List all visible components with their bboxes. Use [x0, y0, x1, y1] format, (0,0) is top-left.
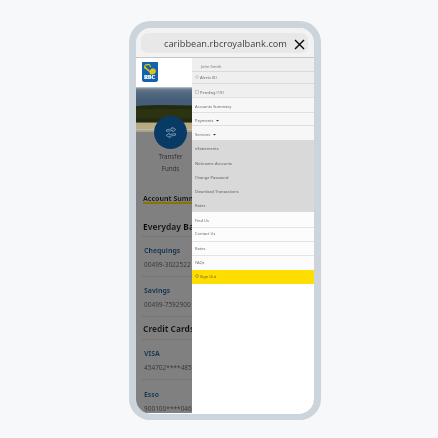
staticText: 00499-7592900 [144, 300, 191, 309]
staticText: Download Transactions [195, 189, 239, 194]
staticText: 00499-3022522 [144, 260, 191, 269]
button[interactable]: Services [192, 129, 314, 139]
button[interactable]: Find Us [192, 215, 314, 225]
staticText: Sign Out [200, 274, 217, 279]
button[interactable]: Transfer Funds [154, 116, 187, 149]
button[interactable]: Savings [136, 286, 314, 314]
button[interactable]: Payments [192, 115, 314, 125]
button[interactable]: John Smith [192, 61, 314, 71]
staticText: caribbean.rbcroyalbank.com [164, 37, 287, 50]
button[interactable]: Accounts Summary [192, 101, 314, 111]
staticText: Accounts Summary [195, 104, 232, 109]
button[interactable]: Esso [136, 390, 314, 414]
button[interactable]: VISA [136, 349, 314, 377]
button[interactable]: Chequings [136, 246, 314, 274]
button[interactable]: Rates [192, 200, 314, 210]
staticText: Find Us [195, 218, 209, 223]
button[interactable]: caribbean.rbcroyalbank.com [141, 33, 308, 53]
button[interactable]: Rates [192, 243, 314, 253]
staticText: Savings [144, 286, 171, 295]
staticText: Funds [139, 164, 202, 172]
staticText: Rates [195, 246, 206, 251]
staticText: Account Summary [143, 194, 207, 204]
staticText: Change Password [195, 175, 229, 180]
staticText: Services [195, 132, 211, 137]
button[interactable]: Alerts (0) [192, 72, 314, 82]
staticText: 900100****0460 [144, 404, 196, 413]
button[interactable]: Sign Out [192, 271, 314, 281]
button[interactable]: Change Password [192, 172, 314, 182]
button[interactable]: eStatements [192, 143, 314, 153]
staticText: Alerts (0) [200, 75, 217, 80]
staticText: FAQs [195, 260, 205, 265]
staticText: Transfer [139, 152, 202, 160]
staticText: Esso [144, 390, 160, 399]
staticText: eStatements [195, 146, 219, 151]
button[interactable]: FAQs [192, 257, 314, 267]
button[interactable]: Nickname Accounts [192, 158, 314, 168]
staticText: Rates [195, 203, 206, 208]
staticText: RBC [144, 73, 156, 80]
button[interactable]: Pending (19) [192, 87, 314, 97]
staticText: Payments [195, 118, 214, 123]
button[interactable]: Download Transactions [192, 186, 314, 196]
staticText: Everyday Banking [143, 221, 218, 232]
button[interactable]: Contact Us [192, 228, 314, 238]
staticText: VISA [144, 349, 160, 358]
staticText: Pending (19) [200, 90, 224, 95]
staticText: Contact Us [195, 231, 216, 236]
staticText: Chequings [144, 246, 181, 255]
button[interactable] [192, 270, 314, 284]
staticText: John Smith [201, 64, 222, 69]
staticText: Credit Cards [143, 323, 195, 334]
button[interactable]: Close tab [295, 40, 304, 49]
staticText: 454702****4850 [144, 363, 196, 372]
staticText: Nickname Accounts [195, 161, 232, 166]
